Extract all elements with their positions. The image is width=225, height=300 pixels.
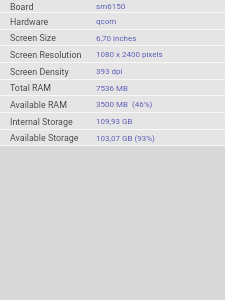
staticText: Internal Storage bbox=[10, 117, 73, 127]
staticText: Total RAM bbox=[10, 83, 52, 93]
staticText: Hardware bbox=[10, 17, 49, 27]
staticText: 7536 MB bbox=[96, 84, 128, 93]
button[interactable]: Hardware bbox=[0, 13, 225, 30]
button[interactable]: Total RAM bbox=[0, 80, 225, 96]
staticText: Available RAM bbox=[10, 100, 67, 110]
staticText: qcom bbox=[96, 17, 117, 26]
staticText: 6,70 inches bbox=[96, 34, 137, 43]
staticText: 393 dpi bbox=[96, 67, 123, 76]
staticText: 103,07 GB (93%) bbox=[96, 134, 155, 143]
button[interactable]: Internal Storage bbox=[0, 113, 225, 130]
staticText: 1080 x 2400 pixels bbox=[96, 50, 163, 59]
staticText: 109,93 GB bbox=[96, 117, 133, 126]
button[interactable]: Screen Size bbox=[0, 30, 225, 46]
staticText: 3500 MB (46%) bbox=[96, 100, 153, 109]
button[interactable]: Available RAM bbox=[0, 96, 225, 113]
button[interactable]: Screen Density bbox=[0, 63, 225, 80]
staticText: Board bbox=[10, 2, 34, 12]
button[interactable]: Screen Resolution bbox=[0, 46, 225, 63]
staticText: Screen Resolution bbox=[10, 50, 82, 60]
staticText: Available Storage bbox=[10, 133, 79, 143]
staticText: Screen Density bbox=[10, 67, 69, 77]
button[interactable]: Board bbox=[0, 0, 225, 13]
staticText: Screen Size bbox=[10, 33, 56, 43]
staticText: sm6150 bbox=[96, 2, 126, 11]
button[interactable]: Available Storage bbox=[0, 130, 225, 146]
